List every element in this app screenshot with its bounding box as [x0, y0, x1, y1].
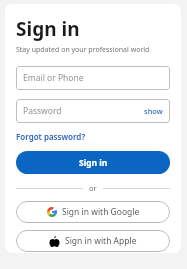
button[interactable]: Google logo [16, 201, 170, 223]
other: Google logo [47, 207, 57, 217]
staticText: Email or Phone [23, 72, 84, 84]
button[interactable]: Email or Phone [16, 66, 170, 90]
button[interactable]: show [144, 106, 163, 116]
button[interactable]: Password [16, 99, 170, 123]
staticText: Stay updated on your professional world [16, 45, 150, 55]
staticText: Forgot password? [16, 131, 86, 142]
staticText: Password [23, 105, 62, 117]
button[interactable]: Sign in [16, 151, 170, 174]
staticText: show [144, 106, 163, 116]
other: Apple logo [49, 236, 60, 247]
staticText: Sign in with Apple [65, 235, 137, 247]
staticText: Sign in with Google [62, 206, 140, 218]
button[interactable]: Apple logo [16, 230, 170, 252]
staticText: or [89, 183, 97, 193]
staticText: Sign in [16, 16, 80, 42]
staticText: Sign in [79, 157, 108, 169]
button[interactable]: Forgot password? [16, 131, 86, 142]
